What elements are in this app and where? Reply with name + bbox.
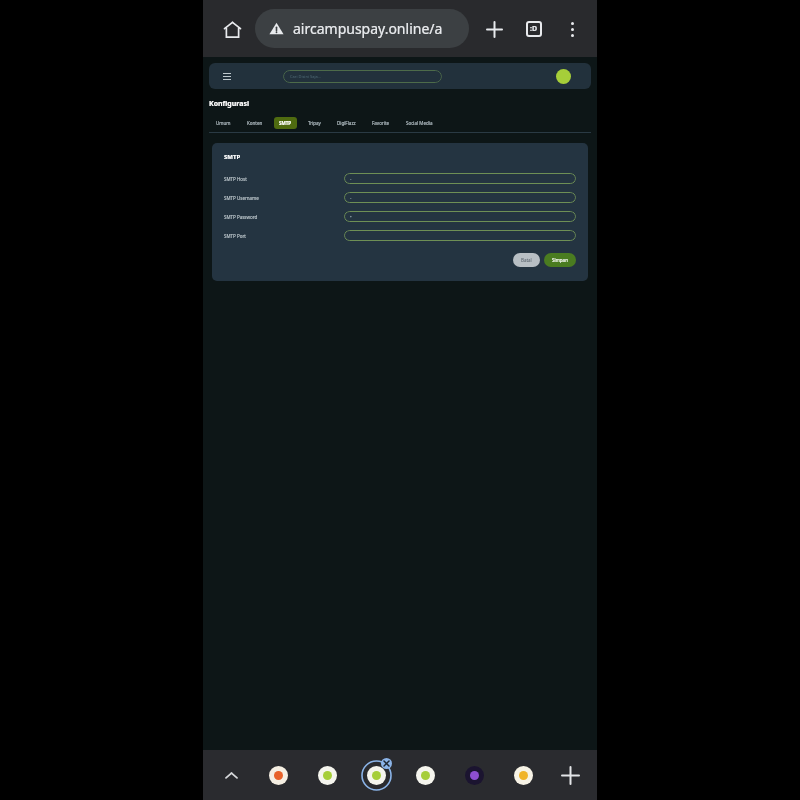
button[interactable]: Tripay — [303, 117, 326, 129]
button[interactable]: More options — [555, 12, 589, 46]
staticText: Umum — [216, 120, 231, 126]
button[interactable]: DigiFlazz — [332, 117, 361, 129]
button[interactable]: Close tab — [381, 758, 392, 769]
staticText: SMTP Username — [224, 195, 344, 201]
staticText: SMTP Port — [224, 233, 344, 239]
button[interactable]: - — [344, 192, 576, 203]
staticText: SMTP — [279, 120, 292, 126]
staticText: Batal — [521, 257, 532, 263]
button[interactable]: aircampuspay.online/a — [255, 9, 469, 48]
staticText: SMTP Host — [224, 176, 344, 182]
staticText: aircampuspay.online/a — [293, 19, 443, 38]
staticText: Konten — [247, 120, 263, 126]
button[interactable]: New tab — [477, 12, 511, 46]
button[interactable]: Menu — [219, 68, 235, 84]
button[interactable]: Home — [215, 12, 249, 46]
button[interactable]: Favorite — [367, 117, 395, 129]
button[interactable]: Cari Disini Saja... — [283, 70, 442, 83]
staticText: SMTP — [224, 153, 241, 161]
staticText: DigiFlazz — [337, 120, 356, 126]
button[interactable]: SMTP — [274, 117, 297, 129]
staticText: - — [350, 176, 352, 182]
button[interactable]: Konten — [242, 117, 268, 129]
button[interactable]: • — [344, 211, 576, 222]
staticText: :D — [530, 24, 538, 34]
staticText: Tripay — [308, 120, 321, 126]
button[interactable]: Tab — [310, 758, 344, 792]
button[interactable]: Tab — [457, 758, 491, 792]
button[interactable]: Batal — [513, 253, 540, 267]
staticText: SMTP Password — [224, 214, 344, 220]
staticText: Social Media — [406, 120, 433, 126]
button[interactable]: Profile — [556, 69, 571, 84]
button[interactable]: Tab — [506, 758, 540, 792]
staticText: Favorite — [372, 120, 390, 126]
button[interactable]: Tab — [261, 758, 295, 792]
button[interactable]: Tab — [359, 758, 393, 792]
staticText: • — [350, 214, 352, 220]
button[interactable]: Social Media — [401, 117, 438, 129]
button[interactable]: Umum — [211, 117, 236, 129]
staticText: Cari Disini Saja... — [290, 74, 321, 79]
button[interactable]: New tab — [555, 760, 585, 790]
button[interactable]: Expand — [217, 761, 245, 789]
button[interactable]: Tabs — [517, 12, 551, 46]
button[interactable] — [344, 230, 576, 241]
staticText: Konfigurasi — [209, 99, 250, 109]
button[interactable]: - — [344, 173, 576, 184]
button[interactable]: Tab — [408, 758, 442, 792]
staticText: Simpan — [552, 257, 568, 263]
button[interactable]: Simpan — [544, 253, 576, 267]
staticText: - — [350, 195, 352, 201]
